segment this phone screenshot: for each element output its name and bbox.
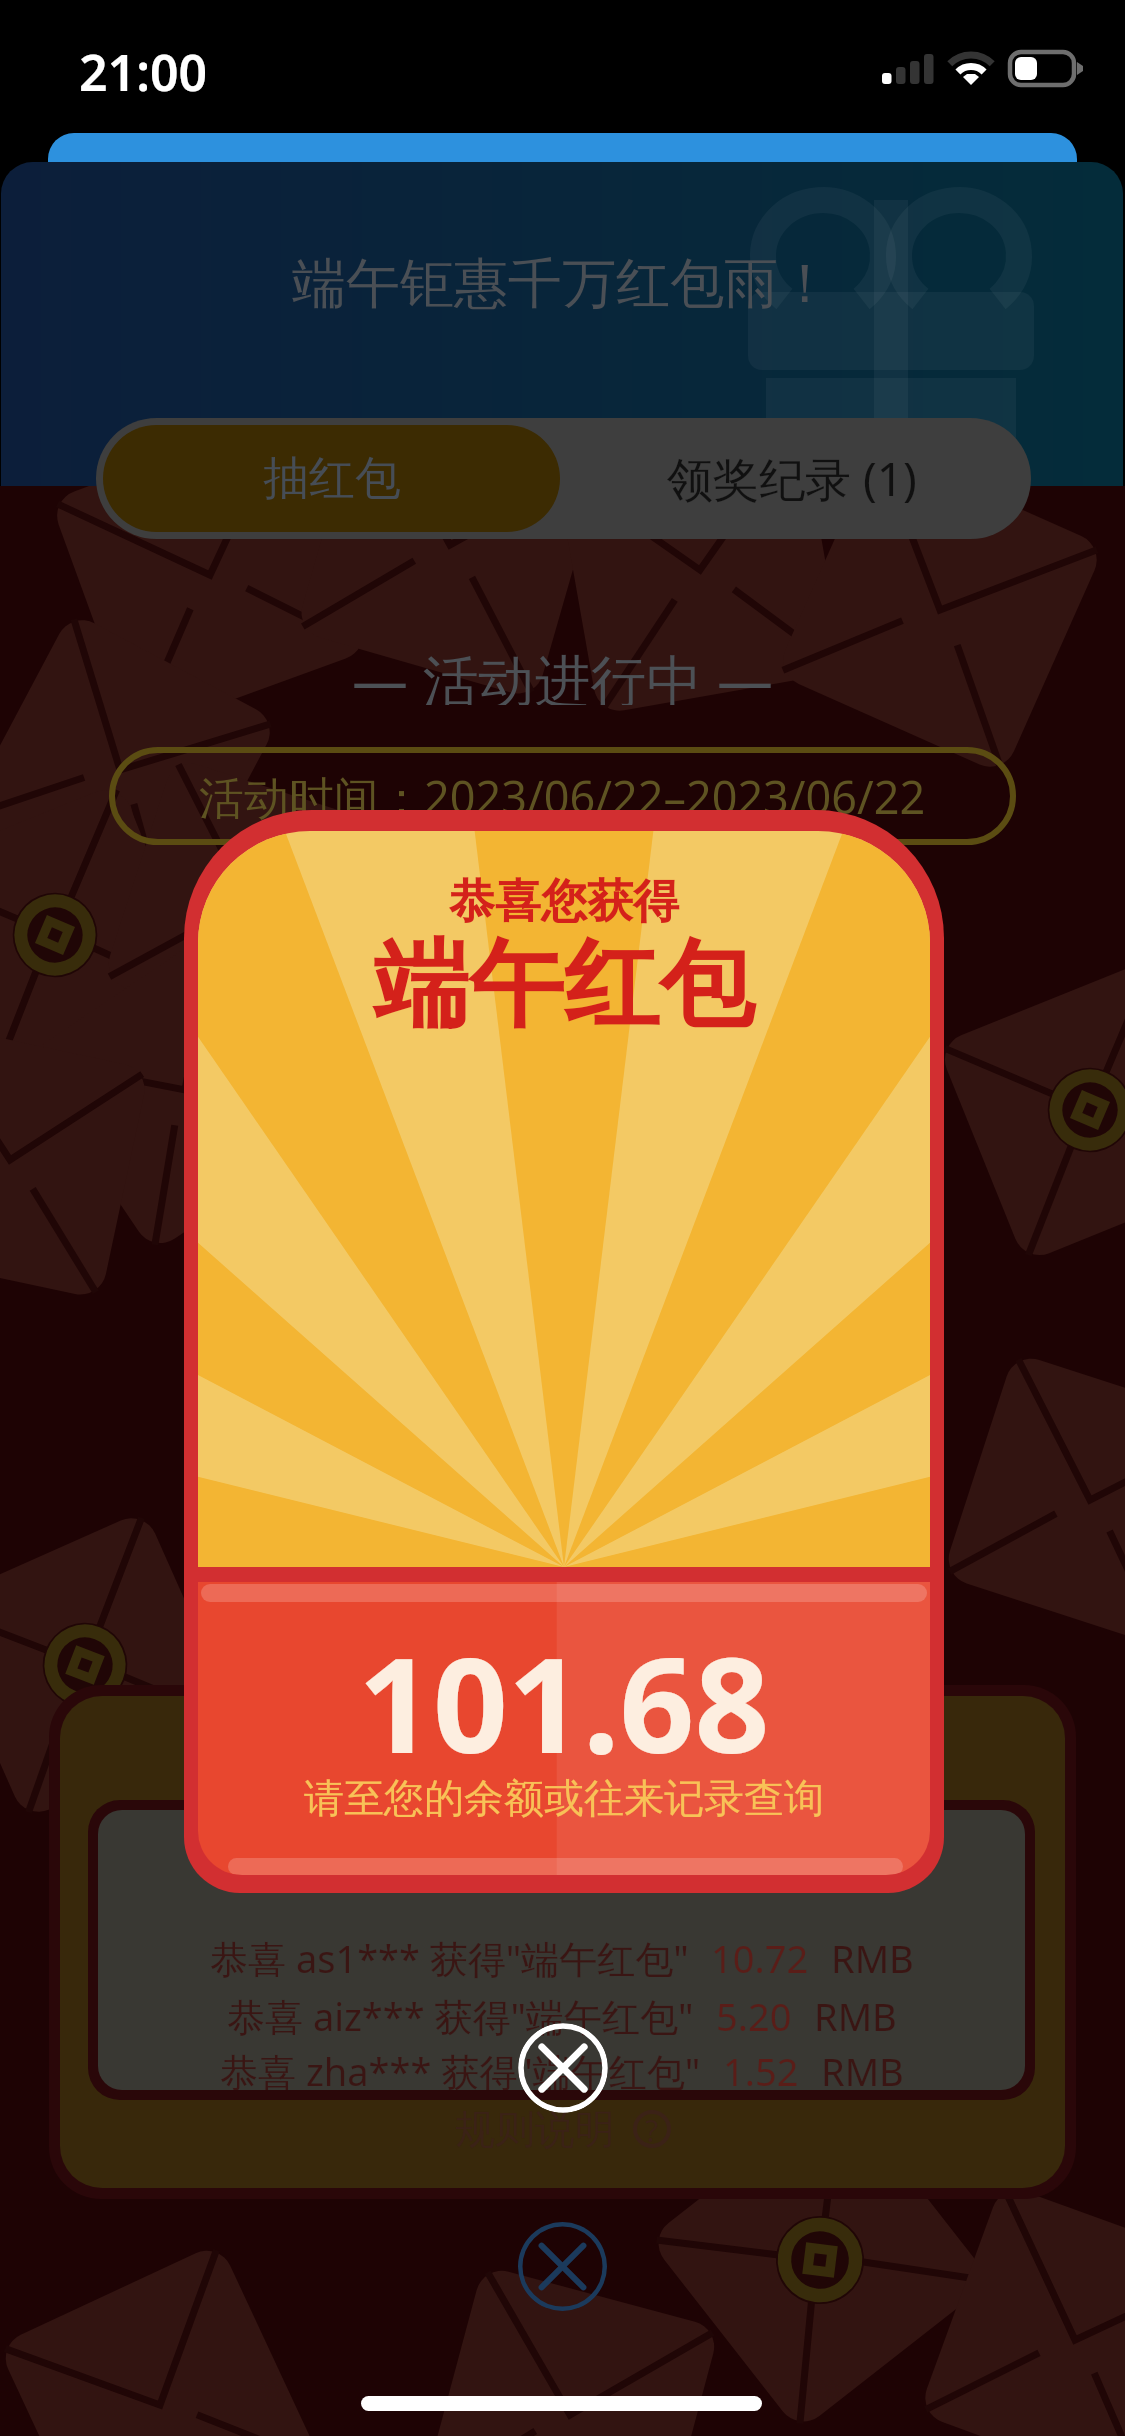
staticText: ? [645, 2110, 659, 2148]
staticText: RMB [814, 1990, 897, 2042]
staticText: 端午钜惠千万红包雨！ [1, 250, 1123, 318]
staticText: 恭喜 zha*** 获得"端午红包" [220, 2045, 701, 2090]
button[interactable]: Close activity [518, 2222, 607, 2311]
staticText: 规则说明 [455, 2104, 615, 2154]
staticText: 恭喜 as1*** 获得"端午红包" [210, 1932, 689, 1984]
staticText: 请至您的余额或往来记录查询 [304, 1773, 824, 1823]
staticText: 恭喜您获得 [449, 873, 679, 931]
staticText: 端午红包 [374, 926, 754, 1046]
staticText: 活动时间：2023/06/22–2023/06/22 [199, 766, 926, 827]
staticText: 抽红包 [263, 450, 401, 508]
staticText: 10.72 [711, 1932, 809, 1984]
button[interactable]: 领奖纪录 (1) [560, 425, 1024, 532]
staticText: 领奖纪录 (1) [667, 447, 917, 510]
staticText: 1.52 [723, 2045, 799, 2090]
staticText: 恭喜 aiz*** 获得"端午红包" [227, 1990, 694, 2042]
button[interactable]: Close [518, 2023, 608, 2113]
staticText: 21:00 [79, 38, 208, 106]
staticText: 5.20 [716, 1990, 792, 2042]
staticText: RMB [821, 2045, 904, 2090]
staticText: RMB [831, 1932, 914, 1984]
button[interactable]: 规则说明 [60, 2100, 1065, 2158]
button[interactable]: 抽红包 [103, 425, 560, 532]
staticText: 101.68 [358, 1613, 770, 1791]
staticText: — 活动进行中 — [352, 641, 774, 705]
